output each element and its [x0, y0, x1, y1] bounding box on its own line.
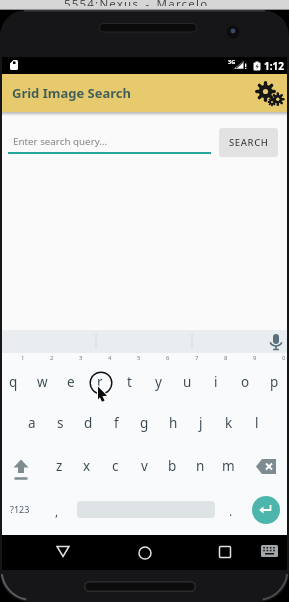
button[interactable]: d	[75, 413, 101, 433]
button[interactable]: h	[160, 413, 186, 433]
staticText: z	[56, 457, 63, 475]
staticText: k	[225, 414, 233, 432]
button[interactable]: j	[188, 413, 214, 433]
staticText: h	[169, 414, 178, 432]
button[interactable]: q	[2, 372, 26, 392]
button[interactable]: u	[174, 372, 200, 392]
button[interactable]	[252, 496, 280, 524]
button[interactable]: c	[102, 456, 128, 476]
staticText: u	[183, 373, 192, 391]
button[interactable]	[134, 544, 156, 562]
button[interactable]: v	[131, 456, 157, 476]
staticText: c	[112, 457, 119, 475]
staticText: .	[229, 503, 233, 519]
button[interactable]: l	[244, 413, 270, 433]
button[interactable]: k	[216, 413, 242, 433]
staticText: w	[37, 373, 48, 391]
button[interactable]: m	[215, 456, 241, 476]
staticText: r	[97, 373, 103, 391]
staticText: g	[140, 414, 149, 432]
staticText: ,	[55, 503, 59, 519]
staticText: 3	[79, 354, 83, 362]
staticText: v	[141, 457, 148, 475]
staticText: SEARCH	[229, 136, 269, 149]
staticText: 1	[21, 354, 25, 362]
staticText: 9	[253, 354, 257, 362]
button[interactable]: ,	[50, 503, 64, 519]
button[interactable]	[260, 544, 280, 559]
staticText: e	[67, 373, 75, 391]
staticText: b	[168, 457, 177, 475]
button[interactable]: p	[261, 372, 287, 392]
button[interactable]: x	[74, 456, 100, 476]
button[interactable]	[254, 82, 286, 108]
staticText: m	[222, 457, 235, 475]
staticText: 1:12	[264, 59, 284, 72]
button[interactable]: t	[116, 372, 142, 392]
button[interactable]: a	[19, 413, 45, 433]
staticText: 0	[282, 354, 286, 362]
staticText: 8	[224, 354, 228, 362]
staticText: t	[127, 373, 132, 391]
staticText: o	[241, 373, 250, 391]
staticText: q	[9, 373, 18, 391]
button[interactable]: b	[159, 456, 185, 476]
button[interactable]: r	[87, 372, 113, 392]
staticText: 4	[108, 354, 112, 362]
staticText: a	[28, 414, 36, 432]
staticText: i	[214, 373, 218, 391]
staticText: 3G	[228, 58, 236, 65]
staticText: f	[114, 414, 119, 432]
staticText: l	[255, 414, 259, 432]
staticText: 5554:Nexus_-_Marcelo	[64, 0, 209, 6]
staticText: x	[83, 457, 91, 475]
staticText: Enter search query...	[13, 135, 108, 148]
button[interactable]: n	[187, 456, 213, 476]
staticText: 7	[195, 354, 199, 362]
staticText: ?123	[10, 503, 30, 515]
staticText: y	[155, 373, 162, 391]
button[interactable]: y	[145, 372, 171, 392]
button[interactable]: .	[224, 503, 238, 519]
staticText: j	[199, 414, 203, 432]
button[interactable]: i	[203, 372, 229, 392]
button[interactable]: ?123	[6, 501, 34, 517]
staticText: 5	[137, 354, 141, 362]
staticText: p	[270, 373, 279, 391]
staticText: Grid Image Search	[12, 84, 132, 102]
staticText: 6	[166, 354, 170, 362]
staticText: s	[57, 414, 64, 432]
staticText: n	[196, 457, 205, 475]
button[interactable]	[214, 543, 236, 561]
button[interactable]: w	[29, 372, 55, 392]
staticText: d	[84, 414, 93, 432]
button[interactable]: g	[131, 413, 157, 433]
staticText: 2	[50, 354, 54, 362]
button[interactable]: f	[103, 413, 129, 433]
button[interactable]: SEARCH	[219, 128, 278, 157]
button[interactable]	[52, 543, 74, 561]
button[interactable]	[254, 458, 282, 476]
button[interactable]: e	[58, 372, 84, 392]
button[interactable]: z	[46, 456, 72, 476]
button[interactable]: s	[47, 413, 73, 433]
button[interactable]	[7, 458, 35, 480]
button[interactable]	[2, 330, 287, 353]
button[interactable]: o	[232, 372, 258, 392]
